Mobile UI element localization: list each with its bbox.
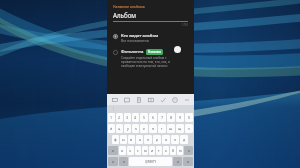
button[interactable]: а	[136, 135, 143, 144]
staticText: б	[172, 148, 175, 153]
staticText: ю	[179, 148, 182, 153]
button[interactable]: т	[156, 146, 162, 155]
staticText: 7	[161, 115, 164, 120]
staticText: Создайте отдельный альбом с приватностью…	[121, 56, 170, 68]
button[interactable]: ц	[116, 124, 123, 133]
button[interactable]: Language	[173, 157, 182, 166]
staticText: 5	[143, 115, 146, 120]
staticText: 0	[188, 115, 191, 120]
button[interactable]: Кто видит альбом	[113, 32, 188, 44]
button[interactable]: р	[153, 135, 161, 144]
button[interactable]: 7	[158, 113, 166, 122]
button[interactable]: Voice input	[158, 95, 167, 104]
staticText: ⋮	[111, 106, 115, 111]
button[interactable]: к	[132, 124, 139, 133]
button[interactable]: 4	[132, 113, 139, 122]
staticText: я	[121, 148, 124, 153]
button[interactable]: ы	[120, 135, 127, 144]
button[interactable]: л	[171, 135, 179, 144]
staticText: ч	[129, 148, 132, 153]
button[interactable]: Emoji	[119, 157, 128, 166]
staticText: QWERTY	[145, 160, 157, 164]
staticText: щ	[178, 126, 182, 131]
staticText: о	[165, 137, 168, 142]
button[interactable]: Translate	[146, 95, 155, 104]
button[interactable]: ю	[177, 146, 183, 155]
button[interactable]: м	[142, 146, 148, 155]
button[interactable]: ш	[167, 124, 175, 133]
staticText: и	[151, 148, 154, 153]
button[interactable]: Stickers	[122, 95, 131, 104]
button[interactable]: 1	[108, 113, 115, 122]
staticText: 6	[152, 115, 155, 120]
staticText: а	[139, 137, 141, 142]
button[interactable]: з	[185, 124, 193, 133]
staticText: 4	[134, 115, 137, 120]
button[interactable]: 9	[176, 113, 184, 122]
button[interactable]: щ	[176, 124, 184, 133]
button[interactable]: 2	[116, 113, 123, 122]
button[interactable]: н	[149, 124, 157, 133]
button[interactable]: с	[135, 146, 141, 155]
button[interactable]: Альбом	[113, 11, 188, 22]
staticText: Название альбома	[113, 4, 145, 9]
staticText: н	[152, 126, 155, 131]
staticText: 9	[179, 115, 182, 120]
button[interactable]: 5	[140, 113, 148, 122]
staticText: г	[161, 126, 163, 131]
button[interactable]: о	[162, 135, 170, 144]
button[interactable]: в	[128, 135, 135, 144]
button[interactable]: п	[144, 135, 152, 144]
staticText: Фотолента	[121, 49, 144, 55]
button[interactable]: More	[182, 95, 191, 104]
staticText: ш	[169, 126, 173, 131]
staticText: й	[110, 126, 113, 131]
button[interactable]: Backspace	[184, 146, 193, 155]
button[interactable]: Emoji	[170, 95, 179, 104]
button[interactable]: й	[108, 124, 115, 133]
button[interactable]: у	[124, 124, 131, 133]
staticText: д	[183, 137, 186, 142]
button[interactable]: я	[119, 146, 126, 155]
button[interactable]: г	[158, 124, 166, 133]
staticText: е	[143, 126, 145, 131]
staticText: ц	[118, 126, 121, 131]
button[interactable]: Фотолента	[113, 48, 188, 69]
button[interactable]: д	[180, 135, 188, 144]
button[interactable]: Keyboard settings	[110, 95, 119, 104]
staticText: Кто видит альбом	[121, 33, 159, 39]
staticText: Все пользователи	[121, 39, 149, 43]
staticText: п	[147, 137, 150, 142]
button[interactable]: 0	[185, 113, 193, 122]
button[interactable]: Numbers	[108, 157, 118, 166]
staticText: л	[174, 137, 177, 142]
button[interactable]: Return	[183, 157, 193, 166]
staticText: Новинка	[148, 50, 161, 54]
staticText: 2	[118, 115, 121, 120]
button[interactable]: ф	[112, 135, 119, 144]
button[interactable]: ч	[127, 146, 134, 155]
staticText: Альбом	[113, 11, 137, 19]
staticText: т	[158, 148, 160, 153]
staticText: ь	[165, 148, 167, 153]
button[interactable]: е	[140, 124, 148, 133]
button[interactable]: 8	[167, 113, 175, 122]
button[interactable]: 3	[124, 113, 131, 122]
staticText: 1	[110, 115, 113, 120]
staticText: у	[127, 126, 129, 131]
staticText: р	[156, 137, 159, 142]
button[interactable]: ь	[163, 146, 169, 155]
staticText: к	[135, 126, 137, 131]
staticText: ф	[114, 137, 117, 142]
button[interactable]: б	[170, 146, 176, 155]
staticText: с	[137, 148, 139, 153]
button[interactable]: QWERTY	[129, 157, 172, 166]
button[interactable]: и	[149, 146, 155, 155]
button[interactable]: Clipboard	[134, 95, 143, 104]
button[interactable]: Shift	[108, 146, 118, 155]
staticText: 3	[126, 115, 129, 120]
staticText: м	[144, 148, 147, 153]
button[interactable]: 6	[149, 113, 157, 122]
staticText: в	[130, 137, 133, 142]
staticText: 8	[170, 115, 173, 120]
